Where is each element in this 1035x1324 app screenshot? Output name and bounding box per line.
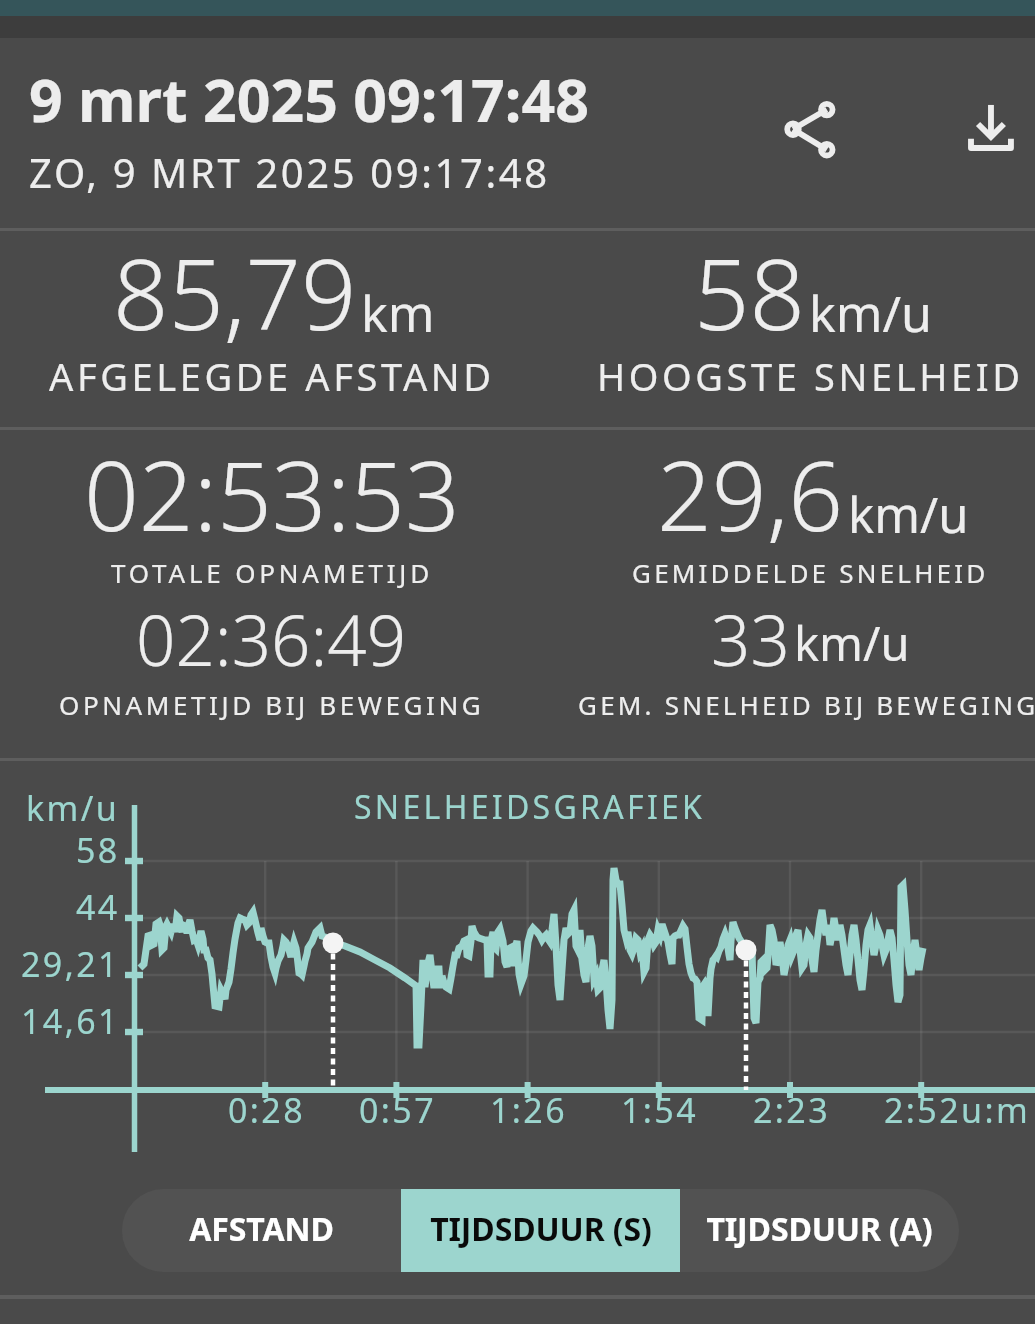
staticText: 9 mrt 2025 09:17:48: [29, 59, 589, 139]
button[interactable]: TIJDSDUUR (A): [680, 1189, 959, 1272]
staticText: 33: [711, 592, 790, 686]
staticText: AFGELEGDE AFSTAND: [49, 350, 495, 402]
staticText: 85,79: [113, 226, 357, 358]
staticText: 14,61: [21, 998, 120, 1044]
staticText: km/u: [26, 785, 120, 831]
staticText: km/u: [794, 611, 910, 675]
staticText: 29,6: [657, 428, 844, 559]
staticText: u:m: [961, 1087, 1031, 1133]
staticText: km/u: [848, 481, 969, 548]
staticText: HOOGSTE SNELHEID: [597, 350, 1024, 402]
staticText: 1:26: [490, 1087, 568, 1133]
staticText: OPNAMETIJD BIJ BEWEGING: [59, 687, 485, 722]
staticText: 44: [76, 884, 120, 930]
staticText: 0:28: [228, 1087, 306, 1133]
staticText: 2:52: [884, 1087, 962, 1133]
staticText: 02:53:53: [84, 428, 460, 559]
staticText: 58: [694, 226, 805, 358]
staticText: 29,21: [21, 941, 120, 987]
staticText: 02:36:49: [136, 592, 407, 686]
button[interactable]: Share: [762, 81, 858, 177]
staticText: SNELHEIDSGRAFIEK: [354, 785, 706, 829]
staticText: AFSTAND: [189, 1207, 334, 1251]
staticText: GEM. SNELHEID BIJ BEWEGING: [578, 687, 1035, 722]
button[interactable]: AFSTAND: [122, 1189, 401, 1272]
staticText: ZO, 9 MRT 2025 09:17:48: [29, 145, 550, 199]
button[interactable]: TIJDSDUUR (S): [401, 1189, 680, 1272]
staticText: TIJDSDUUR (A): [706, 1207, 933, 1251]
staticText: TOTALE OPNAMETIJD: [111, 555, 433, 590]
staticText: km: [361, 279, 435, 347]
staticText: 0:57: [359, 1087, 437, 1133]
staticText: GEMIDDELDE SNELHEID: [632, 555, 989, 590]
button[interactable]: Download: [942, 79, 1035, 175]
staticText: TIJDSDUUR (S): [430, 1207, 652, 1251]
staticText: 2:23: [753, 1087, 831, 1133]
staticText: km/u: [809, 279, 932, 347]
staticText: 1:54: [621, 1087, 699, 1133]
staticText: 58: [76, 827, 120, 873]
